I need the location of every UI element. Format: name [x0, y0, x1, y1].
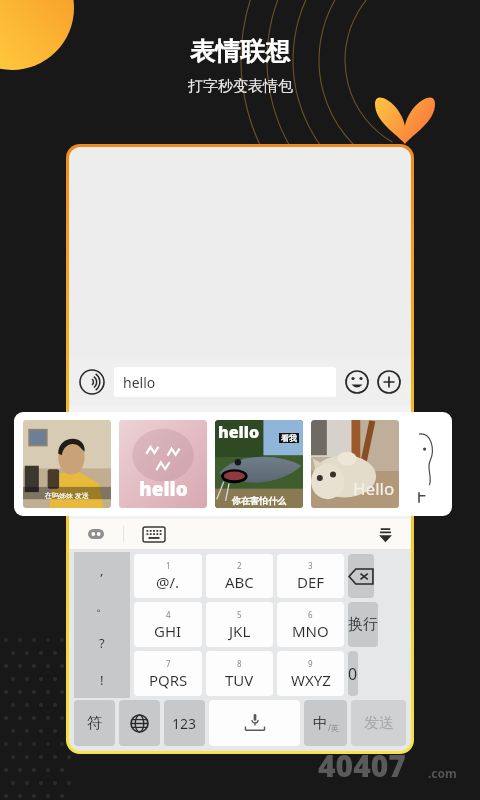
- button[interactable]: hello: [119, 420, 207, 508]
- staticText: 9: [308, 658, 313, 669]
- button[interactable]: 3: [277, 554, 344, 598]
- staticText: 发送: [364, 714, 394, 733]
- staticText: 打字秒变表情包: [188, 77, 293, 96]
- staticText: 看我: [281, 433, 297, 443]
- staticText: 表情联想: [190, 36, 290, 67]
- button[interactable]: ?: [74, 624, 130, 661]
- button[interactable]: !: [74, 661, 130, 698]
- staticText: MNO: [292, 621, 329, 641]
- staticText: 4: [166, 609, 171, 620]
- button[interactable]: Voice input space: [209, 700, 300, 746]
- staticText: ABC: [225, 572, 254, 592]
- staticText: TUV: [225, 670, 254, 690]
- button[interactable]: More: [377, 370, 401, 394]
- staticText: 中: [313, 714, 328, 733]
- button[interactable]: hello: [114, 367, 336, 397]
- staticText: 3: [308, 560, 313, 571]
- staticText: DEF: [297, 572, 325, 592]
- button[interactable]: 发送: [351, 700, 406, 746]
- staticText: ,: [100, 561, 104, 579]
- staticText: 2: [237, 560, 242, 571]
- staticText: Hello: [353, 477, 395, 500]
- button[interactable]: 8: [206, 651, 273, 696]
- staticText: 40407: [318, 745, 406, 786]
- staticText: /英: [328, 722, 339, 733]
- button[interactable]: Emoji: [345, 370, 369, 394]
- button[interactable]: 123: [164, 700, 205, 746]
- button[interactable]: Backspace: [348, 554, 374, 598]
- staticText: 7: [166, 658, 171, 669]
- staticText: hello: [139, 476, 188, 502]
- button[interactable]: Sogou logo: [69, 519, 123, 549]
- staticText: .com: [428, 765, 457, 781]
- staticText: 8: [237, 658, 242, 669]
- staticText: !: [100, 671, 104, 689]
- button[interactable]: [407, 420, 447, 508]
- button[interactable]: Switch language: [119, 700, 160, 746]
- button[interactable]: 中: [304, 700, 347, 746]
- staticText: 你在害怕什么: [232, 495, 286, 506]
- button[interactable]: hello: [215, 420, 303, 508]
- staticText: 123: [172, 714, 197, 733]
- button[interactable]: 9: [277, 651, 344, 696]
- button[interactable]: 0: [348, 651, 358, 696]
- button[interactable]: 换行: [348, 602, 378, 647]
- staticText: 6: [308, 609, 313, 620]
- staticText: ?: [99, 634, 105, 652]
- staticText: 在吗姊妹 发送: [45, 491, 89, 501]
- button[interactable]: Hide keyboard: [359, 519, 411, 549]
- staticText: @/.: [156, 572, 180, 592]
- staticText: PQRS: [149, 670, 188, 690]
- button[interactable]: 7: [134, 651, 202, 696]
- button[interactable]: Voice input: [79, 369, 105, 395]
- button[interactable]: ,: [74, 552, 130, 588]
- button[interactable]: Keyboard layout: [124, 519, 184, 549]
- staticText: hello: [123, 373, 156, 392]
- button[interactable]: 5: [206, 602, 273, 647]
- staticText: WXYZ: [291, 670, 331, 690]
- staticText: hello: [218, 421, 260, 443]
- button[interactable]: 6: [277, 602, 344, 647]
- button[interactable]: 在吗姊妹 发送: [23, 420, 111, 508]
- button[interactable]: 。: [74, 588, 130, 624]
- staticText: 0: [348, 663, 358, 685]
- button[interactable]: Hello: [311, 420, 399, 508]
- button[interactable]: 2: [206, 554, 273, 598]
- staticText: 。: [96, 598, 109, 614]
- staticText: 符: [87, 714, 102, 733]
- staticText: GHI: [154, 621, 182, 641]
- staticText: 5: [237, 609, 242, 620]
- button[interactable]: 1: [134, 554, 202, 598]
- staticText: 1: [166, 560, 171, 571]
- button[interactable]: 符: [74, 700, 115, 746]
- staticText: 换行: [348, 615, 378, 634]
- staticText: JKL: [229, 621, 251, 641]
- button[interactable]: 4: [134, 602, 202, 647]
